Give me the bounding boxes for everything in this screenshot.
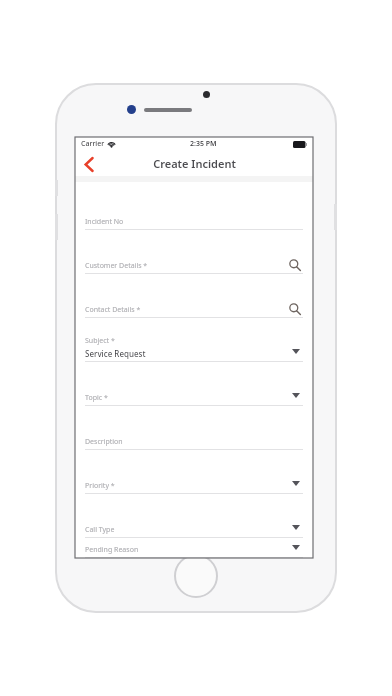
staticText: Pending Reason <box>85 545 139 555</box>
button[interactable]: Back <box>79 154 99 174</box>
button[interactable]: Open dropdown <box>289 388 303 402</box>
button[interactable]: Priority * <box>85 450 303 494</box>
staticText: Incident No <box>85 217 124 227</box>
button[interactable]: Open dropdown <box>289 520 303 534</box>
button[interactable]: Customer Details * <box>85 230 303 274</box>
button[interactable]: Open dropdown <box>289 344 303 358</box>
button[interactable]: Incident No <box>85 186 303 230</box>
staticText: Topic * <box>85 393 108 403</box>
staticText: Service Request <box>85 348 146 359</box>
staticText: Customer Details * <box>85 261 148 271</box>
button[interactable]: Pending Reason <box>85 538 303 558</box>
button[interactable]: Search <box>287 301 303 317</box>
staticText: Call Type <box>85 525 115 535</box>
staticText: Contact Details * <box>85 305 141 315</box>
staticText: Subject * <box>85 336 115 346</box>
staticText: 2:35 PM <box>190 139 217 149</box>
button[interactable]: Contact Details * <box>85 274 303 318</box>
button[interactable]: Topic * <box>85 362 303 406</box>
button[interactable]: Open dropdown <box>289 540 303 554</box>
button[interactable]: Open dropdown <box>289 476 303 490</box>
staticText: Priority * <box>85 481 115 491</box>
staticText: Carrier <box>81 139 105 149</box>
button[interactable]: Description <box>85 406 303 450</box>
button[interactable]: Call Type <box>85 494 303 538</box>
staticText: Description <box>85 437 123 447</box>
button[interactable]: Search <box>287 257 303 273</box>
button[interactable]: Subject * <box>85 318 303 362</box>
staticText: Create Incident <box>153 156 236 171</box>
